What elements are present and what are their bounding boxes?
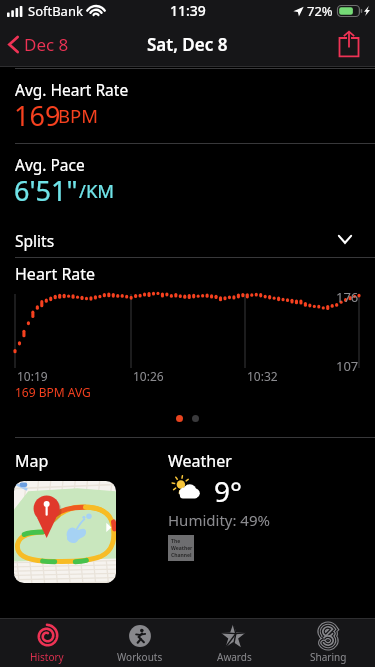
button[interactable]: Avg. Pace — [0, 144, 375, 218]
staticText: 169 — [14, 97, 61, 134]
staticText: Weather — [171, 545, 193, 552]
staticText: Weather — [168, 450, 232, 472]
staticText: Splits — [15, 230, 55, 251]
staticText: 72% — [307, 2, 333, 20]
staticText: Heart Rate — [15, 263, 96, 285]
staticText: Avg. Heart Rate — [15, 79, 129, 100]
staticText: 107 — [336, 357, 359, 375]
button[interactable]: Workouts — [93, 619, 187, 667]
staticText: BPM — [58, 103, 98, 128]
staticText: Awards — [217, 650, 252, 664]
staticText: Dec 8 — [24, 33, 69, 56]
staticText: Avg. Pace — [15, 154, 85, 175]
staticText: Workouts — [117, 650, 163, 664]
button[interactable]: Splits — [0, 218, 375, 257]
staticText: /KM — [79, 178, 115, 203]
staticText: SoftBank — [28, 2, 83, 20]
staticText: 6'51" — [14, 172, 78, 209]
staticText: 11:39 — [170, 1, 206, 20]
button[interactable]: Map — [14, 481, 116, 583]
staticText: 10:26 — [133, 368, 164, 384]
button[interactable]: Sharing — [281, 619, 375, 667]
staticText: 10:19 — [17, 368, 48, 384]
button[interactable]: History — [0, 619, 93, 667]
staticText: 176 — [336, 288, 359, 306]
staticText: The — [171, 538, 181, 545]
staticText: Humidity: 49% — [168, 510, 270, 530]
staticText: Sharing — [310, 650, 347, 664]
button[interactable]: Avg. Heart Rate — [0, 69, 375, 143]
button[interactable]: Dec 8 — [0, 25, 79, 64]
staticText: 169 BPM AVG — [15, 384, 91, 400]
button[interactable]: Awards — [187, 619, 281, 667]
staticText: Channel — [171, 552, 192, 559]
staticText: Sat, Dec 8 — [147, 33, 228, 56]
staticText: Map — [15, 450, 49, 472]
button[interactable]: Share — [323, 25, 375, 64]
staticText: 10:32 — [247, 368, 278, 384]
staticText: History — [30, 650, 64, 664]
staticText: 9° — [214, 472, 243, 510]
